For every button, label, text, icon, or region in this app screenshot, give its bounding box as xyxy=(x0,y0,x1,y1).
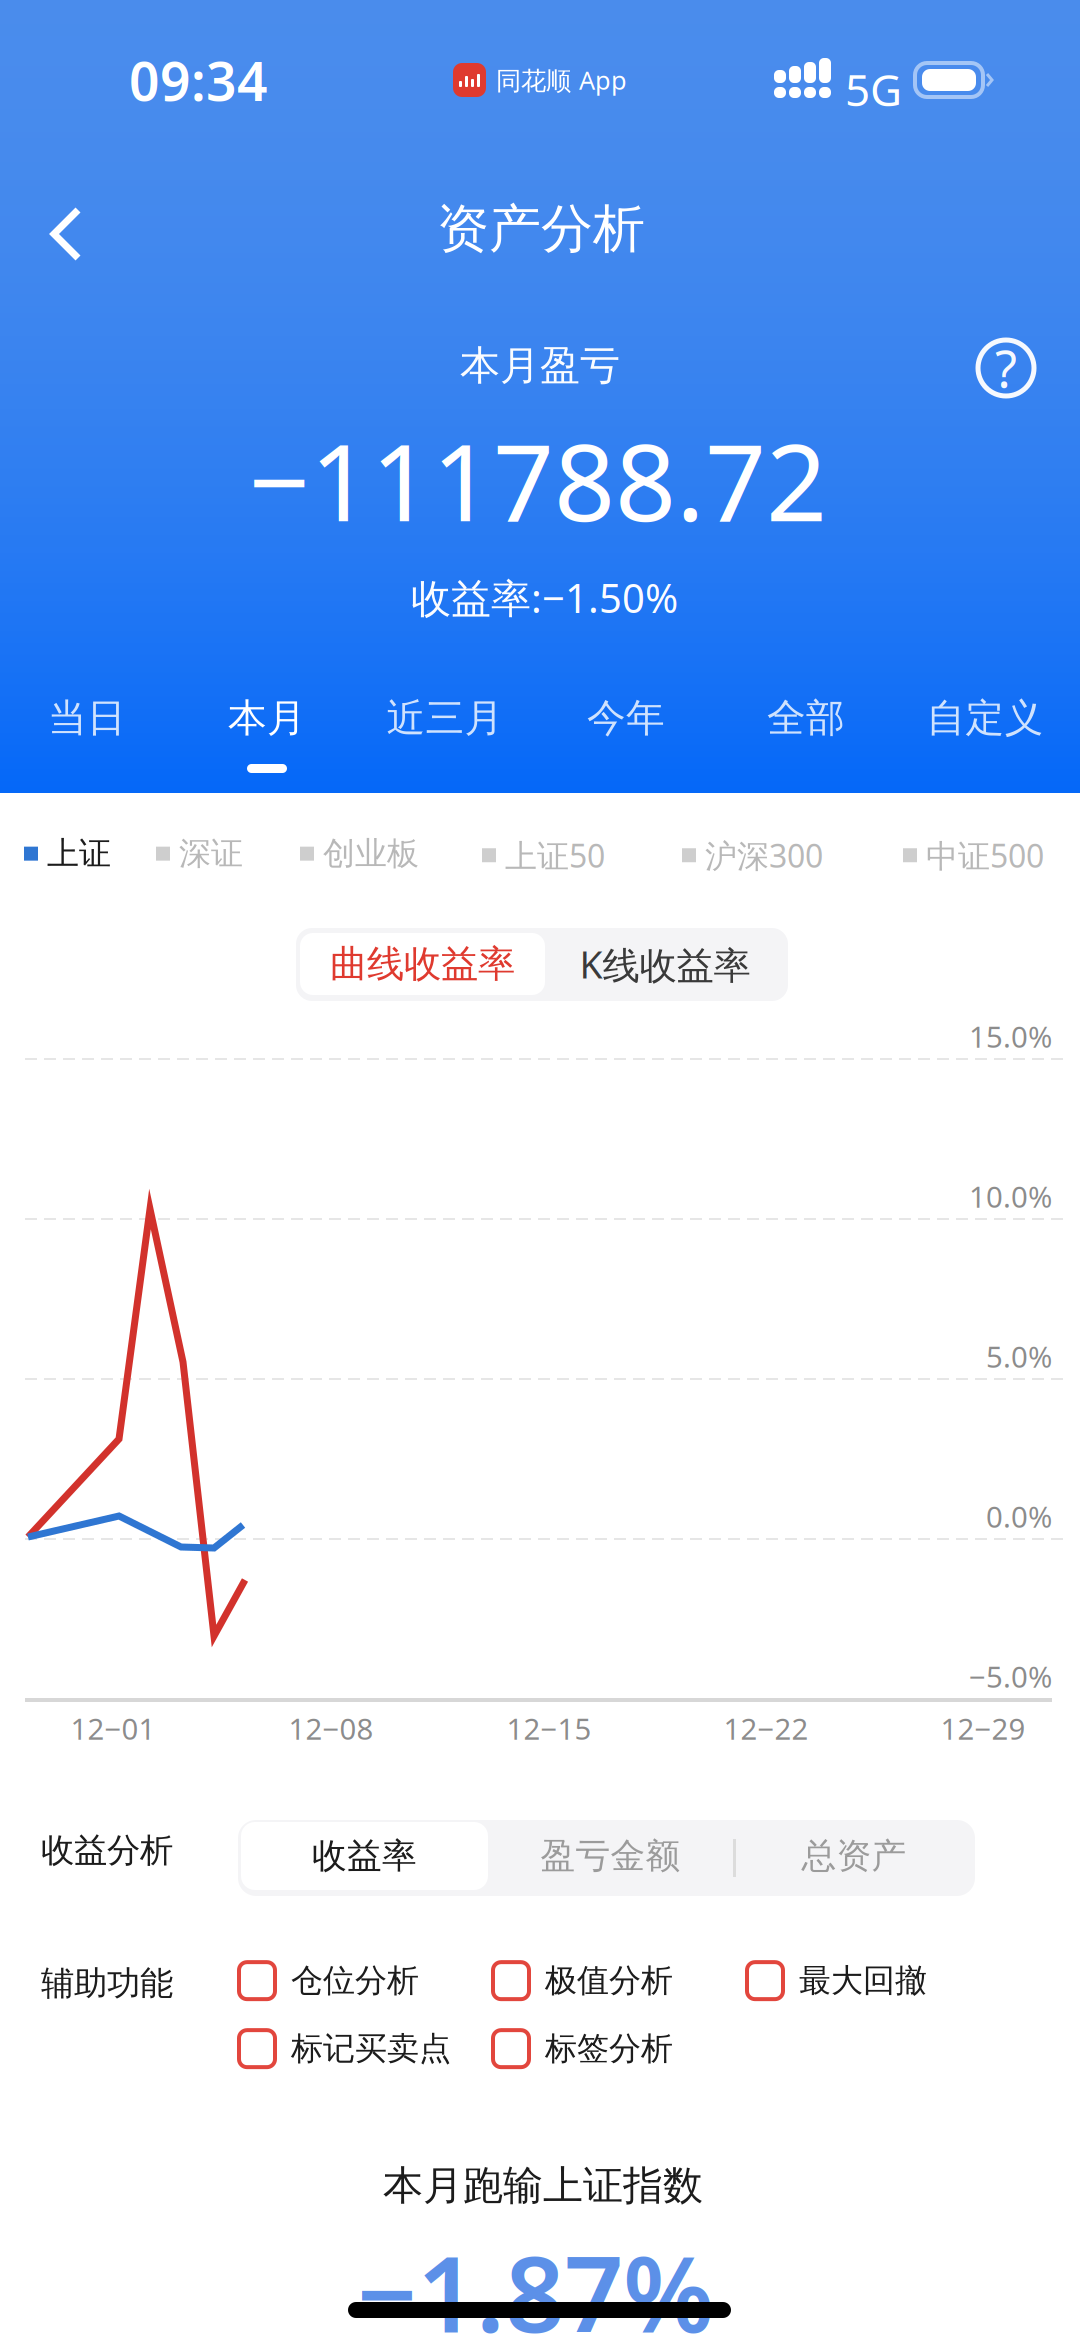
button[interactable]: 标记买卖点 xyxy=(239,2023,451,2074)
staticText: 0.0% xyxy=(986,1497,1052,1536)
staticText: 收益分析 xyxy=(41,1830,173,1871)
staticText: 总资产 xyxy=(801,1835,906,1877)
staticText: 12−29 xyxy=(940,1709,1025,1748)
staticText: 中证500 xyxy=(926,834,1044,876)
staticText: 自定义 xyxy=(926,694,1043,742)
staticText: 12−15 xyxy=(506,1709,591,1748)
button[interactable]: 最大回撤 xyxy=(747,1955,927,2006)
staticText: 15.0% xyxy=(969,1017,1052,1056)
button[interactable]: Help xyxy=(958,320,1054,416)
button[interactable]: 盈亏金额 xyxy=(488,1822,733,1890)
button[interactable]: 收益率 xyxy=(241,1822,488,1890)
button[interactable]: Back xyxy=(12,180,120,288)
staticText: 全部 xyxy=(767,694,845,742)
staticText: 标记买卖点 xyxy=(291,2029,451,2068)
staticText: 收益率:−1.50% xyxy=(411,571,678,624)
staticText: −1.87% xyxy=(357,2223,714,2342)
staticText: 同花顺 App xyxy=(496,63,627,97)
staticText: 本月盈亏 xyxy=(460,341,620,390)
staticText: 10.0% xyxy=(969,1177,1052,1216)
staticText: 09:34 xyxy=(129,45,268,116)
button[interactable]: 总资产 xyxy=(733,1822,975,1890)
button[interactable]: 曲线收益率 xyxy=(300,933,545,995)
button[interactable]: 沪深300 xyxy=(682,820,823,890)
staticText: 标签分析 xyxy=(545,2029,673,2068)
button[interactable]: 上证 xyxy=(24,820,111,887)
button[interactable]: 本月 xyxy=(213,690,321,773)
staticText: 曲线收益率 xyxy=(330,941,515,987)
staticText: 创业板 xyxy=(323,834,419,873)
button[interactable]: 极值分析 xyxy=(493,1955,673,2006)
staticText: 资产分析 xyxy=(437,197,645,261)
staticText: 收益率 xyxy=(312,1835,417,1877)
button[interactable]: 创业板 xyxy=(300,820,419,887)
staticText: 5.0% xyxy=(986,1337,1052,1376)
staticText: 本月跑输上证指数 xyxy=(383,2161,703,2210)
button[interactable]: 今年 xyxy=(572,690,680,773)
button[interactable]: 当日 xyxy=(35,690,139,773)
staticText: K线收益率 xyxy=(579,939,750,989)
staticText: 12−08 xyxy=(288,1709,373,1748)
staticText: 极值分析 xyxy=(545,1961,673,2000)
staticText: 12−22 xyxy=(723,1709,808,1748)
button[interactable]: 中证500 xyxy=(903,820,1044,890)
button[interactable]: 近三月 xyxy=(373,690,517,773)
staticText: −5.0% xyxy=(969,1657,1052,1696)
staticText: 当日 xyxy=(48,694,126,742)
button[interactable]: 深证 xyxy=(156,820,243,887)
staticText: 本月 xyxy=(228,694,306,742)
button[interactable]: 仓位分析 xyxy=(239,1955,419,2006)
staticText: 沪深300 xyxy=(705,834,823,876)
staticText: 上证 xyxy=(47,834,111,873)
staticText: 仓位分析 xyxy=(291,1961,419,2000)
button[interactable]: K线收益率 xyxy=(546,933,784,995)
staticText: ? xyxy=(995,334,1017,402)
button[interactable]: 自定义 xyxy=(913,690,1057,773)
staticText: 上证50 xyxy=(505,834,605,876)
staticText: 今年 xyxy=(587,694,665,742)
staticText: 12−01 xyxy=(70,1709,155,1748)
staticText: 最大回撤 xyxy=(799,1961,927,2000)
staticText: 近三月 xyxy=(386,694,503,742)
staticText: 辅助功能 xyxy=(41,1963,173,2004)
button[interactable]: 全部 xyxy=(752,690,860,773)
staticText: 盈亏金额 xyxy=(540,1835,680,1877)
staticText: 5G xyxy=(845,60,902,118)
button[interactable]: 标签分析 xyxy=(493,2023,673,2074)
staticText: 深证 xyxy=(179,834,243,873)
button[interactable]: 上证50 xyxy=(482,820,605,890)
staticText: −111788.72 xyxy=(249,409,827,551)
